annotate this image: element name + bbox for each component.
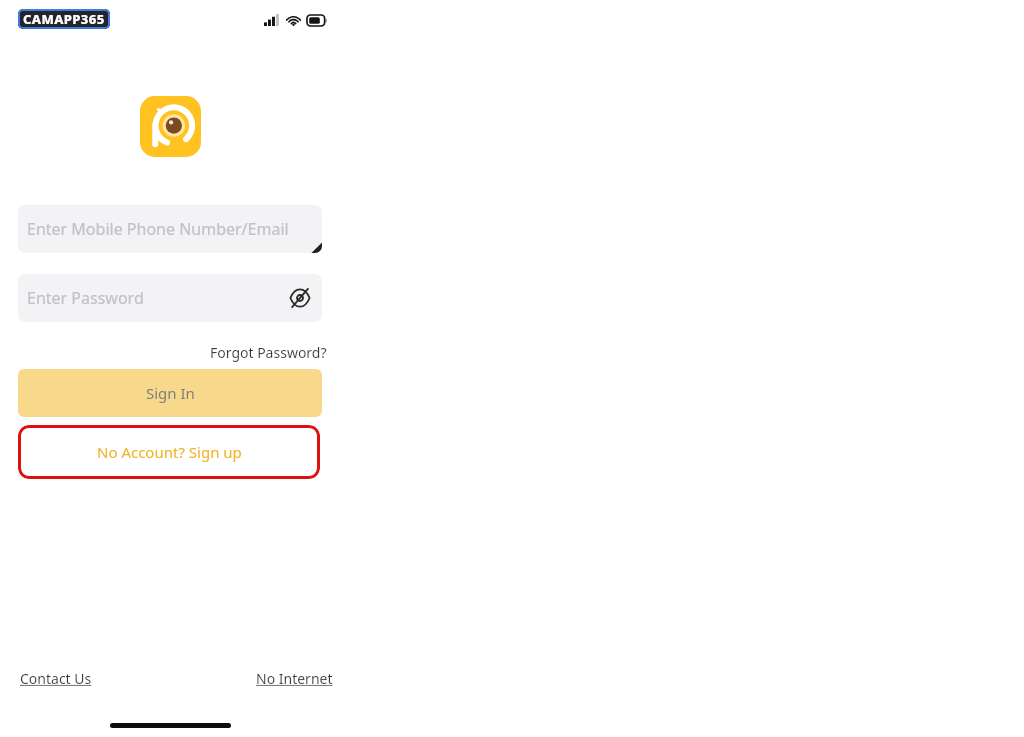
button[interactable]: No Account? Sign up — [18, 425, 320, 479]
button[interactable]: CamApp365 logo — [140, 96, 201, 157]
button[interactable]: Forgot Password? — [206, 339, 331, 366]
button[interactable]: Password — [18, 274, 322, 322]
staticText: Enter Password — [27, 287, 144, 309]
button[interactable]: CAMAPP365 — [23, 10, 105, 28]
staticText: CAMAPP365 — [23, 10, 105, 28]
button[interactable]: Contact Us — [18, 667, 94, 690]
staticText: Sign In — [146, 383, 195, 403]
button[interactable]: No Internet — [254, 667, 335, 690]
staticText: No Internet — [256, 669, 333, 688]
staticText: No Account? Sign up — [97, 442, 242, 462]
button[interactable]: Show password — [288, 286, 312, 310]
button[interactable]: Mobile phone number or email — [18, 205, 322, 253]
staticText: Contact Us — [20, 669, 92, 688]
staticText: Enter Mobile Phone Number/Email — [27, 218, 289, 240]
staticText: Forgot Password? — [210, 343, 327, 362]
button[interactable]: Sign In — [18, 369, 322, 417]
